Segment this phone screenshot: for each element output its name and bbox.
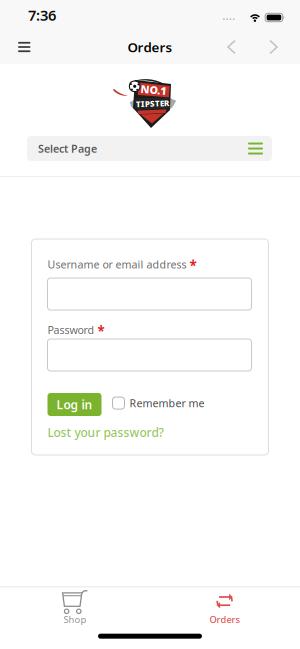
button[interactable]: Remember me — [31, 239, 123, 253]
staticText: Select Page — [38, 141, 97, 156]
staticText: Remember me — [129, 396, 204, 410]
button[interactable] — [31, 239, 235, 271]
staticText: Password — [47, 323, 94, 337]
staticText: Lost your password? — [47, 424, 163, 440]
staticText: TIPSTER — [136, 98, 169, 109]
button[interactable]: Lost your password? — [31, 239, 147, 255]
staticText: 7:36 — [28, 5, 56, 25]
staticText: * — [97, 322, 104, 340]
button[interactable]: Orders — [150, 589, 300, 626]
staticText: Shop — [63, 613, 86, 626]
staticText: Orders — [127, 38, 172, 56]
button[interactable]: Shop — [0, 589, 150, 626]
staticText: NO.1 — [140, 83, 166, 97]
button[interactable] — [31, 239, 235, 271]
button[interactable]: Select Page — [0, 136, 300, 161]
staticText: * — [189, 256, 196, 274]
button[interactable]: Log in — [31, 239, 85, 262]
button[interactable] — [0, 42, 30, 52]
staticText: Username or email address — [47, 257, 186, 271]
staticText: Orders — [209, 613, 240, 626]
staticText: Log in — [56, 396, 92, 412]
button[interactable] — [269, 39, 300, 54]
button[interactable] — [227, 39, 236, 54]
